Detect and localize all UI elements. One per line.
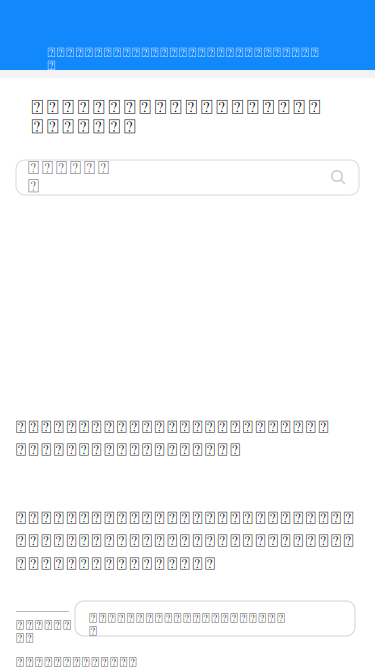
staticText: ⍰⍰⍰⍰⍰⍰⍰⍰⍰⍰⍰⍰⍰⍰ <box>16 656 146 667</box>
staticText: ⍰⍰⍰⍰⍰⍰⍰⍰ <box>16 619 80 645</box>
staticText: ⍰⍰⍰⍰⍰⍰⍰⍰⍰⍰⍰⍰⍰⍰⍰⍰⍰⍰⍰⍰⍰⍰ <box>89 612 294 625</box>
staticText: ⍰⍰⍰⍰⍰⍰⍰⍰⍰⍰⍰⍰⍰⍰⍰⍰⍰⍰⍰⍰⍰⍰⍰⍰⍰⍰⍰⍰⍰⍰⍰⍰⍰⍰⍰⍰⍰⍰⍰⍰… <box>16 419 328 459</box>
staticText: ⍰⍰⍰⍰⍰⍰⍰⍰⍰⍰⍰⍰⍰⍰⍰⍰⍰⍰⍰⍰⍰⍰⍰⍰⍰⍰⍰⍰⍰⍰ <box>47 46 328 59</box>
staticText: ⍰⍰⍰⍰⍰⍰⍰⍰⍰⍰⍰⍰⍰⍰⍰⍰⍰⍰⍰⍰⍰⍰⍰⍰⍰⍰⍰⍰⍰⍰⍰⍰⍰⍰⍰⍰⍰⍰⍰⍰… <box>16 510 354 573</box>
button[interactable]: ⍰⍰⍰⍰⍰⍰⍰ <box>16 160 359 195</box>
staticText: ⍰⍰⍰⍰⍰⍰⍰⍰⍰⍰⍰⍰⍰⍰⍰⍰⍰⍰⍰⍰⍰⍰⍰⍰⍰⍰ <box>31 98 336 137</box>
staticText: ⍰⍰⍰⍰⍰⍰⍰ <box>28 159 109 196</box>
button[interactable]: ⍰⍰⍰⍰⍰⍰⍰⍰⍰⍰⍰⍰⍰⍰⍰⍰⍰⍰⍰⍰⍰⍰⍰⍰⍰⍰⍰⍰⍰⍰ <box>0 43 375 63</box>
